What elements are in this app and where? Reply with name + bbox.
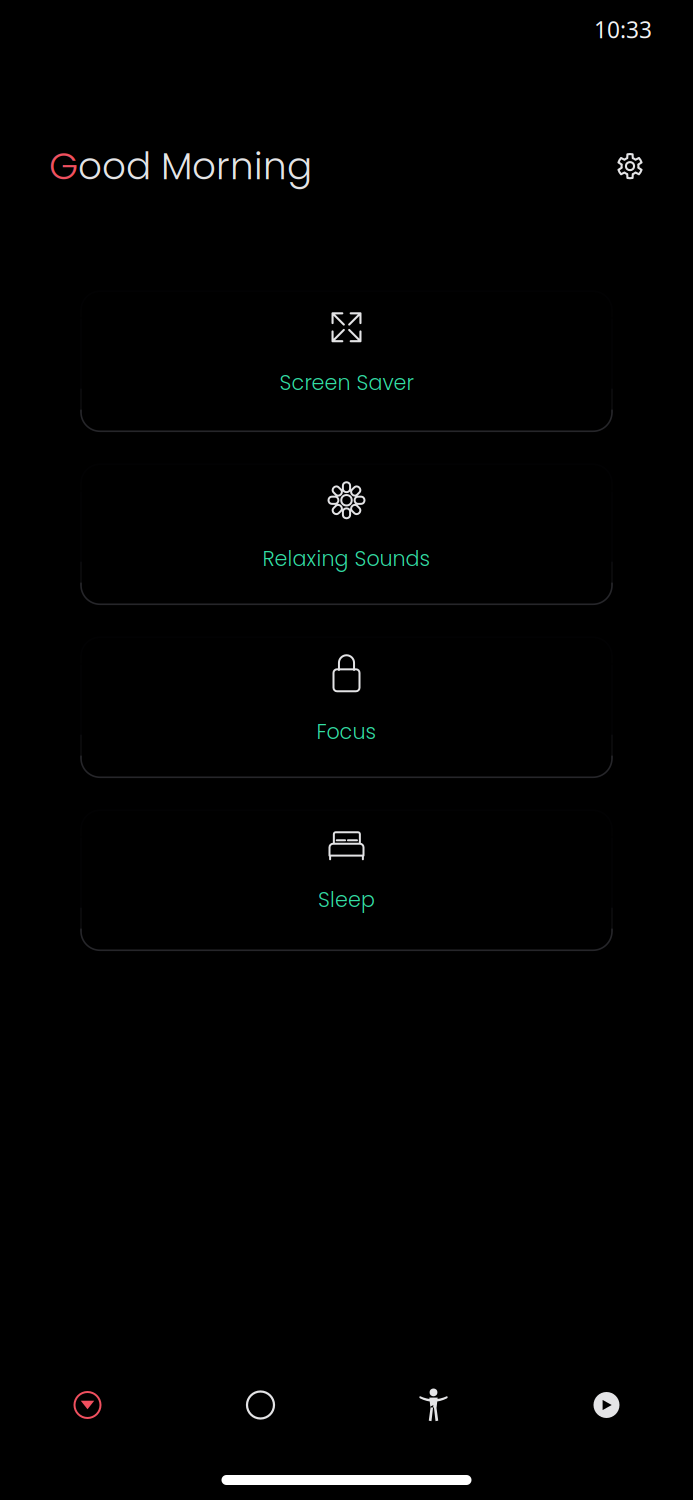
staticText: 10:33	[594, 14, 652, 44]
button[interactable]: Sleep	[81, 810, 612, 950]
button[interactable]: Back	[57, 1377, 117, 1433]
button[interactable]: Settings	[607, 143, 653, 189]
staticText: Relaxing Sounds	[262, 544, 430, 573]
staticText: Screen Saver	[279, 368, 413, 397]
staticText: G	[49, 140, 78, 192]
staticText: Sleep	[318, 885, 375, 914]
button[interactable]: Relaxing Sounds	[81, 464, 612, 604]
button[interactable]: Focus	[81, 637, 612, 777]
button[interactable]: Accessibility	[403, 1377, 463, 1433]
button[interactable]: Play	[576, 1377, 636, 1433]
button[interactable]: Screen Saver	[81, 291, 612, 431]
button[interactable]: Home	[230, 1377, 290, 1433]
staticText: Focus	[316, 717, 376, 746]
staticText: ood Morning	[78, 140, 312, 192]
